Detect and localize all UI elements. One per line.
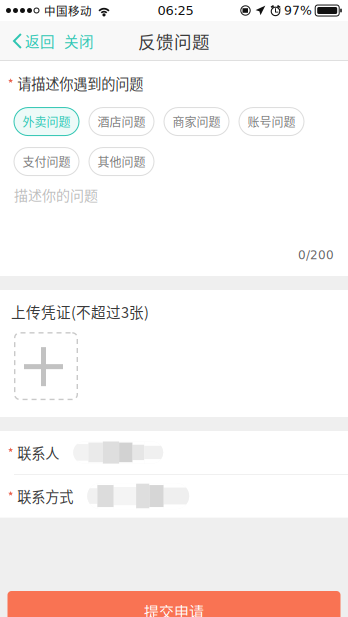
staticText: 0/200 — [298, 248, 334, 262]
staticText: 联系方式 — [17, 486, 73, 506]
button[interactable]: 外卖问题 — [14, 108, 79, 136]
button[interactable]: 上传凭证 — [14, 332, 78, 400]
button[interactable]: 返回 — [0, 22, 55, 59]
staticText: 描述你的问题 — [14, 185, 98, 205]
staticText: 商家问题 — [172, 113, 220, 130]
staticText: 支付问题 — [22, 153, 70, 170]
button[interactable]: 支付问题 — [14, 148, 79, 176]
staticText: 请描述你遇到的问题 — [17, 73, 143, 94]
staticText: 其他问题 — [97, 153, 145, 170]
button[interactable]: 关闭 — [55, 22, 100, 59]
staticText: 97% — [284, 3, 312, 18]
staticText: 提交申请 — [144, 600, 204, 617]
staticText: 外卖问题 — [22, 113, 70, 130]
staticText: 账号问题 — [247, 113, 295, 130]
button[interactable]: 商家问题 — [164, 108, 229, 136]
button[interactable]: 提交申请 — [7, 591, 340, 617]
button[interactable]: 酒店问题 — [89, 108, 154, 136]
staticText: 联系人 — [17, 442, 59, 463]
staticText: 关闭 — [64, 30, 94, 51]
button[interactable]: 账号问题 — [239, 108, 304, 136]
staticText: 中国移动 — [44, 2, 92, 19]
button[interactable]: 其他问题 — [89, 148, 154, 176]
staticText: 06:25 — [157, 3, 193, 18]
staticText: 酒店问题 — [97, 113, 145, 130]
staticText: 上传凭证(不超过3张) — [11, 301, 149, 322]
staticText: 返回 — [25, 30, 55, 51]
staticText: 反馈问题 — [138, 28, 210, 54]
